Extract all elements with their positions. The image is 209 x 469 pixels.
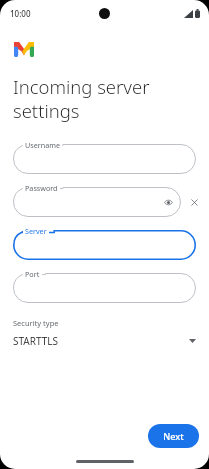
staticText: Port [25,269,40,279]
staticText: Next [163,430,184,442]
staticText: Username [25,140,60,150]
staticText: STARTTLS [13,334,189,348]
button[interactable]: Server [13,230,196,260]
button[interactable]: Clear password [186,194,202,210]
button[interactable]: Next [148,424,199,448]
staticText: Password [25,183,58,193]
button[interactable]: Security type [0,318,209,348]
staticText: Security type [13,318,59,328]
button[interactable]: Password [13,187,181,217]
button[interactable]: Username [13,144,196,174]
staticText: Server [25,226,47,236]
staticText: Incoming server settings [13,74,150,123]
staticText: 10:00 [10,8,31,19]
button[interactable]: Port [13,273,196,303]
